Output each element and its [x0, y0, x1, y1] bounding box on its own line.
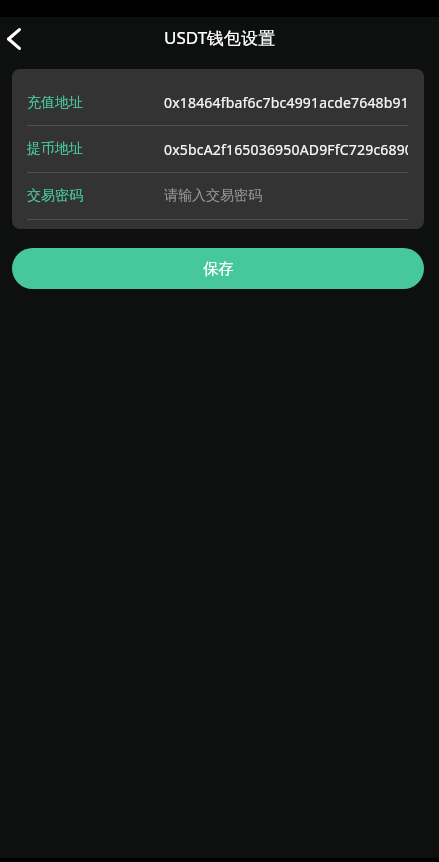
button[interactable]: 提币地址: [12, 126, 424, 172]
button[interactable]: Back: [0, 19, 27, 59]
staticText: 0x18464fbaf6c7bc4991acde7648b91245: [164, 93, 408, 112]
staticText: 请输入交易密码: [164, 187, 262, 205]
button[interactable]: 充值地址: [12, 80, 424, 125]
button[interactable]: 交易密码: [12, 173, 424, 219]
staticText: 保存: [203, 259, 234, 279]
button[interactable]: 保存: [12, 248, 424, 289]
staticText: 提币地址: [27, 140, 164, 158]
staticText: 交易密码: [27, 187, 164, 205]
staticText: USDT钱包设置: [164, 26, 276, 49]
staticText: 0x5bcA2f165036950AD9FfC729c68903fa: [164, 140, 408, 159]
staticText: 充值地址: [27, 94, 164, 112]
